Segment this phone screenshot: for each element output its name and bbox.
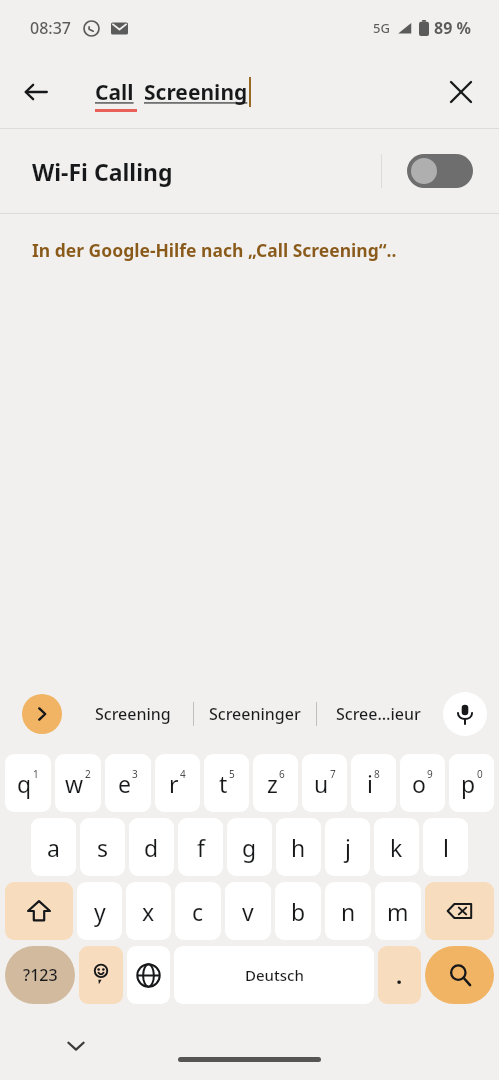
staticText: 6 bbox=[279, 767, 285, 781]
staticText: 4 bbox=[180, 767, 186, 781]
button[interactable]: s bbox=[80, 818, 125, 876]
staticText: d bbox=[144, 832, 159, 863]
staticText: c bbox=[192, 896, 204, 927]
button[interactable]: e bbox=[105, 754, 151, 812]
button[interactable]: ?123 bbox=[5, 946, 75, 1004]
button[interactable]: l bbox=[423, 818, 468, 876]
staticText: In der Google-Hilfe nach „Call Screening… bbox=[32, 238, 397, 262]
staticText: r bbox=[169, 768, 179, 799]
button[interactable]: . bbox=[378, 946, 421, 1004]
button[interactable]: Voice input bbox=[443, 692, 487, 736]
button[interactable]: Deutsch bbox=[174, 946, 374, 1004]
button[interactable]: h bbox=[276, 818, 321, 876]
staticText: z bbox=[267, 768, 278, 799]
button[interactable]: Shift bbox=[5, 882, 73, 940]
button[interactable]: f bbox=[178, 818, 223, 876]
staticText: p bbox=[461, 768, 476, 799]
staticText: 0 bbox=[477, 767, 483, 781]
button[interactable]: c bbox=[175, 882, 221, 940]
staticText: 5 bbox=[229, 767, 235, 781]
staticText: 2 bbox=[85, 767, 91, 781]
button[interactable]: d bbox=[129, 818, 174, 876]
staticText: u bbox=[314, 768, 329, 799]
staticText: Screeninger bbox=[209, 703, 301, 725]
button[interactable]: g bbox=[227, 818, 272, 876]
button[interactable]: Emoji bbox=[79, 946, 123, 1004]
button[interactable]: r bbox=[155, 754, 200, 812]
button[interactable]: Clear search bbox=[437, 68, 485, 116]
staticText: Wi-Fi Calling bbox=[32, 156, 173, 187]
button[interactable]: k bbox=[374, 818, 419, 876]
button[interactable]: Hide keyboard bbox=[60, 1030, 92, 1062]
staticText: 89 % bbox=[434, 17, 471, 39]
button[interactable]: Backspace bbox=[425, 882, 494, 940]
staticText: 1 bbox=[33, 767, 39, 781]
staticText: 5G bbox=[373, 19, 390, 37]
button[interactable]: x bbox=[126, 882, 171, 940]
staticText: j bbox=[345, 832, 351, 863]
staticText: s bbox=[97, 832, 109, 863]
staticText: Screening bbox=[95, 703, 171, 725]
staticText: m bbox=[387, 896, 409, 927]
button[interactable]: Wi-Fi Calling bbox=[0, 129, 499, 213]
staticText: Call bbox=[95, 78, 134, 107]
staticText: Scree…ieur bbox=[336, 703, 421, 725]
button[interactable]: Screening bbox=[72, 692, 193, 736]
button[interactable]: t bbox=[204, 754, 249, 812]
button[interactable]: Back bbox=[12, 68, 60, 116]
button[interactable]: i bbox=[351, 754, 396, 812]
staticText: n bbox=[341, 896, 356, 927]
button[interactable]: Search bbox=[425, 946, 494, 1004]
staticText: o bbox=[412, 768, 426, 799]
button[interactable]: n bbox=[325, 882, 371, 940]
button[interactable]: z bbox=[253, 754, 298, 812]
button[interactable]: Change language bbox=[127, 946, 170, 1004]
button[interactable]: b bbox=[275, 882, 321, 940]
staticText: a bbox=[47, 832, 60, 863]
staticText: q bbox=[17, 768, 32, 799]
staticText: f bbox=[197, 832, 205, 863]
button[interactable]: More suggestions bbox=[22, 694, 62, 734]
staticText: Screening bbox=[144, 78, 248, 107]
button[interactable]: p bbox=[449, 754, 494, 812]
button[interactable]: m bbox=[375, 882, 421, 940]
staticText: 08:37 bbox=[30, 17, 71, 39]
staticText: b bbox=[291, 896, 306, 927]
button[interactable]: u bbox=[302, 754, 347, 812]
button[interactable]: w bbox=[55, 754, 101, 812]
button[interactable]: Screeninger bbox=[194, 692, 316, 736]
button[interactable]: Scree…ieur bbox=[317, 692, 439, 736]
staticText: g bbox=[242, 832, 257, 863]
button[interactable]: q bbox=[5, 754, 51, 812]
staticText: l bbox=[443, 832, 449, 863]
staticText: t bbox=[219, 768, 228, 799]
staticText: x bbox=[142, 896, 155, 927]
staticText: . bbox=[396, 960, 403, 990]
staticText: 8 bbox=[374, 767, 380, 781]
button[interactable]: j bbox=[325, 818, 370, 876]
button[interactable]: In der Google-Hilfe nach „Call Screening… bbox=[0, 214, 499, 286]
staticText: k bbox=[390, 832, 403, 863]
staticText: ?123 bbox=[23, 964, 58, 986]
staticText: h bbox=[291, 832, 306, 863]
staticText: i bbox=[367, 768, 373, 799]
staticText: Deutsch bbox=[245, 965, 304, 985]
staticText: y bbox=[94, 896, 106, 927]
button[interactable]: Wi-Fi Calling toggle bbox=[407, 154, 473, 188]
button[interactable]: o bbox=[400, 754, 445, 812]
staticText: e bbox=[118, 768, 131, 799]
button[interactable]: v bbox=[225, 882, 271, 940]
staticText: 9 bbox=[427, 767, 433, 781]
button[interactable]: a bbox=[31, 818, 76, 876]
button[interactable]: y bbox=[77, 882, 122, 940]
staticText: v bbox=[242, 896, 254, 927]
staticText: 7 bbox=[330, 767, 336, 781]
staticText: w bbox=[65, 768, 84, 799]
staticText: 3 bbox=[132, 767, 138, 781]
